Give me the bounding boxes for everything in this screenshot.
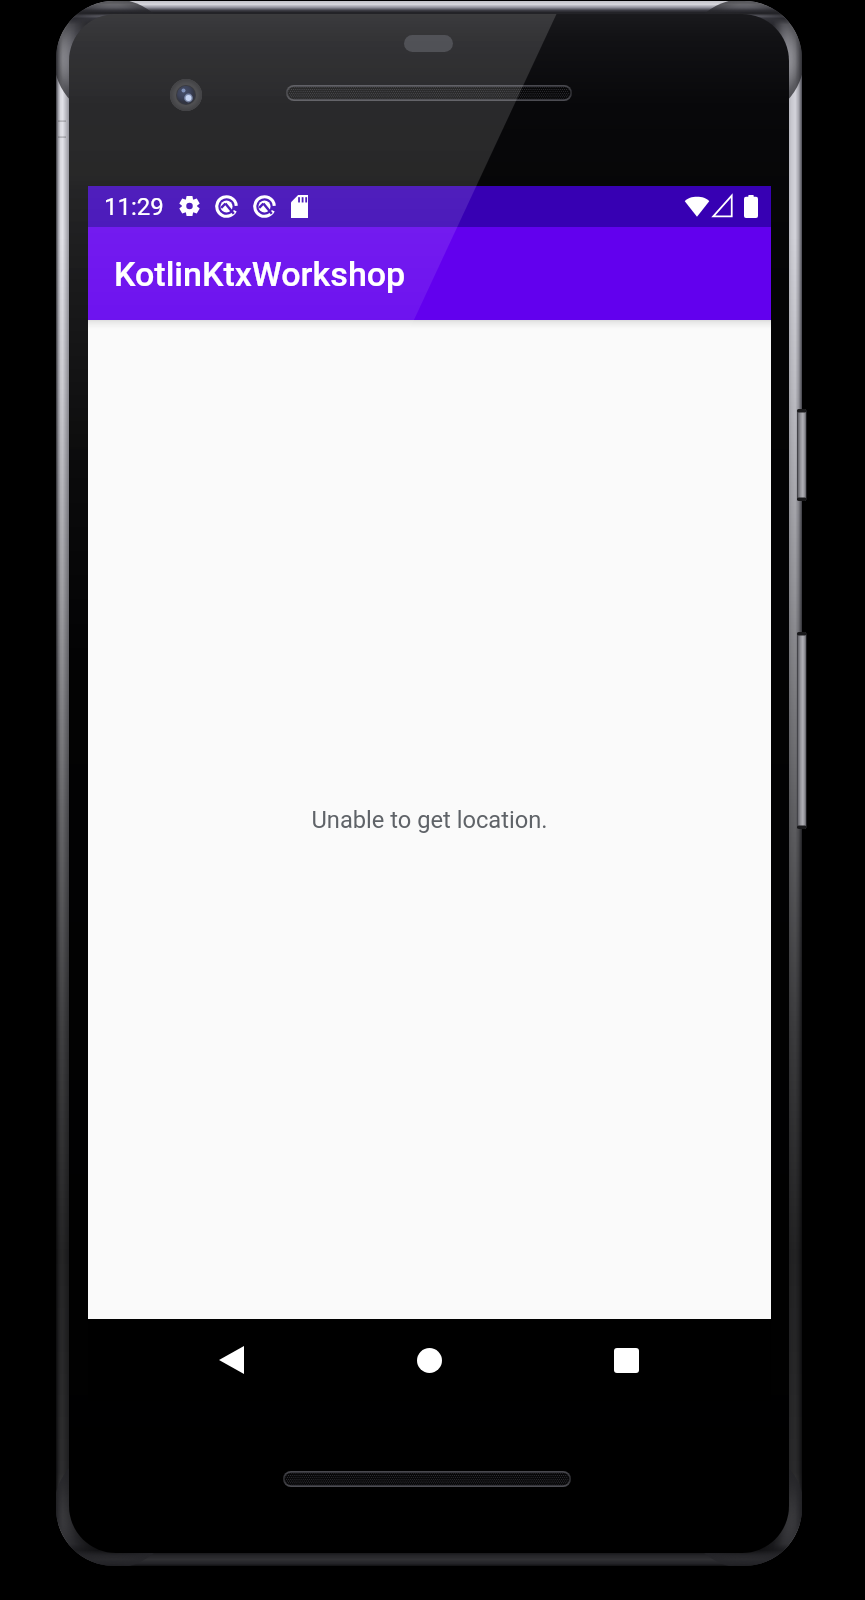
- staticText: KotlinKtxWorkshop: [114, 254, 406, 294]
- button[interactable]: Home: [395, 1326, 463, 1394]
- staticText: Unable to get location.: [311, 806, 548, 834]
- button[interactable]: Back: [197, 1326, 265, 1394]
- button[interactable]: Recent apps: [592, 1326, 660, 1394]
- staticText: 11:29: [104, 193, 164, 221]
